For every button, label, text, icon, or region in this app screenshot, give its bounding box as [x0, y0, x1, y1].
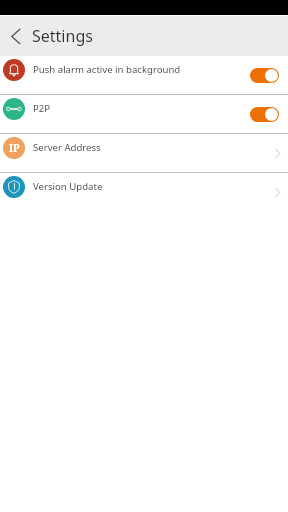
button[interactable]: P2P: [0, 95, 288, 133]
staticText: P2P: [33, 102, 51, 115]
staticText: Push alarm active in background: [33, 63, 181, 76]
staticText: Version Update: [33, 180, 103, 193]
button[interactable]: Back: [0, 20, 32, 52]
button[interactable]: IP: [0, 134, 288, 172]
button[interactable]: Version Update: [0, 173, 288, 211]
staticText: IP: [9, 141, 20, 155]
staticText: Settings: [32, 25, 93, 47]
button[interactable]: Push alarm active in background: [0, 56, 288, 94]
staticText: Server Address: [33, 141, 101, 154]
button[interactable]: Toggle P2P: [250, 107, 279, 122]
button[interactable]: Toggle Push alarm active in background: [250, 68, 279, 83]
